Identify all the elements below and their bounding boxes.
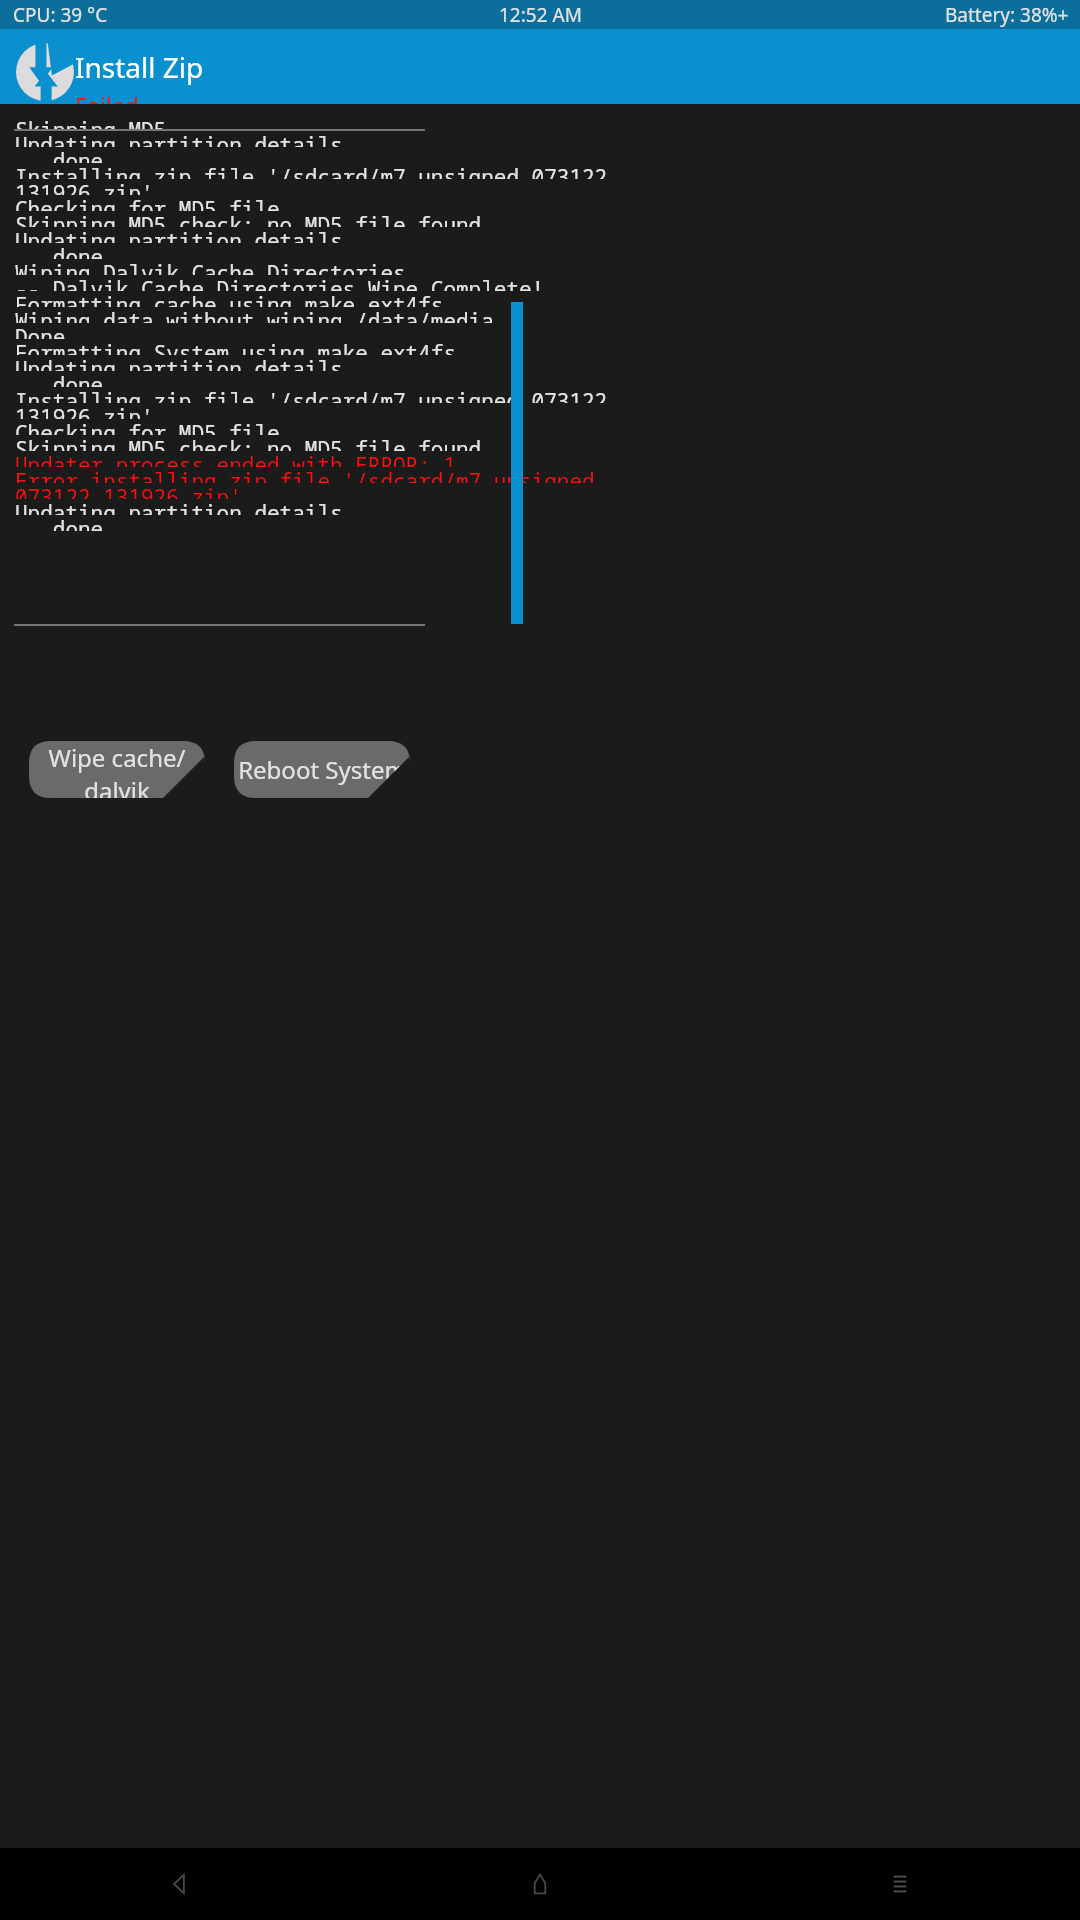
staticText: 131926.zip' <box>15 179 154 195</box>
staticText: Formatting System using make_ext4fs... <box>15 339 494 355</box>
staticText: Failed <box>75 90 139 121</box>
staticText: 073122_131926.zip' <box>15 483 242 499</box>
button[interactable]: Wipe cache/dalvik <box>29 741 205 798</box>
staticText: ...done <box>15 243 104 259</box>
staticText: CPU: 39 °C <box>13 2 108 28</box>
button[interactable]: Back <box>0 1848 360 1920</box>
button[interactable]: Home <box>360 1848 720 1920</box>
staticText: Updating partition details... <box>15 355 381 371</box>
staticText: Skipping MD5 check: no MD5 file found <box>15 435 482 451</box>
staticText: Battery: 38%+ <box>945 2 1069 28</box>
staticText: Done. <box>15 323 78 339</box>
staticText: Installing zip file '/sdcard/m7_unsigned… <box>15 387 620 403</box>
staticText: ...done <box>15 515 104 531</box>
staticText: -- Dalvik Cache Directories Wipe Complet… <box>15 275 545 291</box>
staticText: Reboot System <box>238 753 407 786</box>
staticText: 12:52 AM <box>499 2 582 28</box>
staticText: ...done <box>15 371 104 387</box>
staticText: Wiping data without wiping /data/media .… <box>15 307 545 323</box>
staticText: Skipping MD5 <box>15 116 167 129</box>
staticText: Formatting cache using make_ext4fs... <box>15 291 482 307</box>
staticText: Installing zip file '/sdcard/m7_unsigned… <box>15 163 620 179</box>
staticText: Wiping Dalvik Cache Directories... <box>15 259 444 275</box>
staticText: Updating partition details... <box>15 227 381 243</box>
staticText: 131926.zip' <box>15 403 154 419</box>
staticText: Updating partition details... <box>15 499 381 515</box>
staticText: Checking for MD5 file... <box>15 195 318 211</box>
button[interactable]: Menu <box>720 1848 1080 1920</box>
staticText: Wipe cache/dalvik <box>29 741 205 798</box>
staticText: Updating partition details... <box>15 131 381 147</box>
staticText: Skipping MD5 check: no MD5 file found <box>15 211 482 227</box>
staticText: Install Zip <box>75 48 204 86</box>
staticText: Error installing zip file '/sdcard/m7_un… <box>15 467 608 483</box>
staticText: Checking for MD5 file... <box>15 419 318 435</box>
staticText: ...done <box>15 147 104 163</box>
button[interactable]: Reboot System <box>234 741 410 798</box>
staticText: Updater process ended with ERROR: 1 <box>15 451 456 467</box>
